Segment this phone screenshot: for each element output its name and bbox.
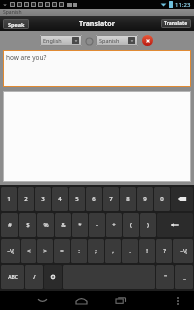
button[interactable]: 9 (137, 187, 153, 211)
button[interactable]: 6 (86, 187, 102, 211)
staticText: ~\{ (180, 248, 187, 255)
staticText: 3 (41, 195, 45, 203)
staticText: ( (130, 221, 132, 229)
button[interactable]: how are you? (3, 50, 191, 87)
staticText: _ (183, 273, 186, 281)
staticText: 7 (109, 195, 113, 203)
button[interactable]: & (55, 213, 71, 237)
staticText: how are you? (6, 53, 47, 62)
button[interactable]: Settings (44, 265, 62, 289)
staticText: Translator (79, 19, 115, 29)
staticText: 0 (160, 195, 164, 203)
staticText: 6 (92, 195, 96, 203)
staticText: Translate (164, 20, 188, 27)
staticText: 1 (7, 195, 11, 203)
button[interactable]: / (25, 265, 43, 289)
staticText: , (112, 247, 114, 255)
staticText: - (96, 221, 98, 229)
button[interactable]: $ (19, 213, 36, 237)
button[interactable]: Spanish (96, 35, 138, 46)
staticText: 5 (75, 195, 79, 203)
button[interactable]: Speak (3, 19, 29, 29)
staticText: ~\{ (7, 248, 14, 255)
staticText: 9 (143, 195, 147, 203)
staticText: Speak (8, 21, 25, 28)
staticText: ? (163, 247, 166, 255)
button[interactable]: 2 (18, 187, 34, 211)
button[interactable]: 7 (103, 187, 119, 211)
button[interactable]: ? (156, 239, 172, 263)
staticText: 11:23 (175, 1, 191, 9)
staticText: : (78, 247, 80, 255)
button[interactable]: Home (70, 291, 93, 310)
staticText: > (43, 247, 47, 255)
button[interactable]: Recents (109, 291, 132, 310)
button[interactable]: More options (169, 291, 187, 310)
button[interactable]: 0 (154, 187, 170, 211)
button[interactable]: 8 (120, 187, 136, 211)
button[interactable]: - (89, 213, 105, 237)
button[interactable]: 4 (52, 187, 68, 211)
staticText: # (8, 221, 12, 229)
staticText: * (78, 221, 82, 229)
staticText: Spanish (3, 9, 22, 16)
staticText: $ (26, 221, 30, 229)
button[interactable]: 1 (1, 187, 17, 211)
button[interactable]: ~\{ (1, 239, 20, 263)
button[interactable]: ~\{ (173, 239, 193, 263)
staticText: < (27, 247, 31, 255)
button[interactable]: , (105, 239, 121, 263)
button[interactable]: Enter (157, 213, 193, 237)
button[interactable]: # (1, 213, 18, 237)
button[interactable]: + (106, 213, 122, 237)
button[interactable]: Translate (161, 19, 191, 28)
button[interactable]: Swap languages (85, 37, 93, 45)
staticText: " (164, 273, 167, 281)
button[interactable]: Back (31, 291, 54, 310)
staticText: % (43, 221, 49, 229)
staticText: ! (146, 247, 148, 255)
button[interactable]: * (72, 213, 88, 237)
button[interactable]: ABC (1, 265, 24, 289)
button[interactable]: ! (139, 239, 155, 263)
button[interactable]: . (122, 239, 138, 263)
staticText: / (33, 273, 36, 281)
staticText: 4 (58, 195, 62, 203)
staticText: Spanish (99, 37, 128, 44)
staticText: English (43, 37, 72, 44)
button[interactable]: Clear (142, 35, 153, 46)
button[interactable]: % (37, 213, 54, 237)
staticText: 2 (24, 195, 28, 203)
button[interactable] (3, 91, 191, 182)
staticText: 8 (126, 195, 130, 203)
button[interactable]: = (54, 239, 70, 263)
button[interactable]: ) (140, 213, 156, 237)
button[interactable]: Backspace (171, 187, 193, 211)
button[interactable]: : (71, 239, 87, 263)
button[interactable]: 3 (35, 187, 51, 211)
staticText: = (60, 247, 64, 255)
staticText: + (112, 221, 116, 229)
button[interactable]: _ (175, 265, 193, 289)
button[interactable]: English (40, 35, 82, 46)
staticText: ) (147, 221, 149, 229)
button[interactable]: < (21, 239, 36, 263)
staticText: ABC (8, 274, 18, 281)
button[interactable]: > (37, 239, 53, 263)
button[interactable]: ; (88, 239, 104, 263)
button[interactable]: ( (123, 213, 139, 237)
staticText: . (129, 247, 131, 255)
staticText: ; (95, 247, 97, 255)
button[interactable]: " (156, 265, 174, 289)
staticText: & (61, 221, 66, 229)
button[interactable]: 5 (69, 187, 85, 211)
